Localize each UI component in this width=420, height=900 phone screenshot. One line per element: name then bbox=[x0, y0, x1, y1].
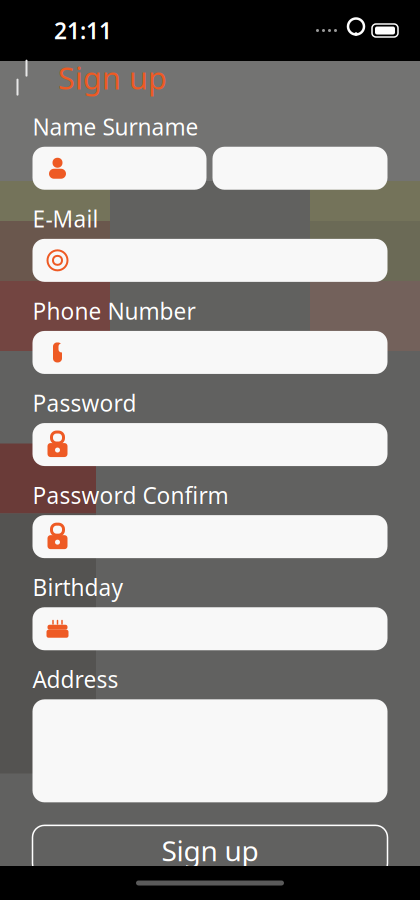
button[interactable] bbox=[32, 147, 206, 190]
button[interactable] bbox=[32, 699, 387, 802]
button[interactable] bbox=[32, 607, 387, 650]
staticText: Name Surname bbox=[32, 112, 198, 142]
button[interactable] bbox=[32, 239, 387, 282]
staticText: E-Mail bbox=[32, 204, 98, 234]
staticText: Sign up bbox=[58, 57, 167, 98]
staticText: Address bbox=[32, 664, 118, 694]
button[interactable] bbox=[212, 147, 387, 190]
button[interactable] bbox=[32, 515, 387, 558]
staticText: Password Confirm bbox=[32, 480, 228, 510]
button[interactable]: Sign up bbox=[32, 825, 387, 875]
button[interactable]: Back bbox=[0, 56, 44, 100]
button[interactable] bbox=[32, 423, 387, 466]
staticText: Password bbox=[32, 388, 136, 418]
staticText: Phone Number bbox=[32, 296, 195, 326]
staticText: 21:11 bbox=[54, 15, 112, 45]
button[interactable] bbox=[32, 331, 387, 374]
staticText: Sign up bbox=[161, 832, 258, 869]
staticText: Birthday bbox=[32, 572, 123, 602]
